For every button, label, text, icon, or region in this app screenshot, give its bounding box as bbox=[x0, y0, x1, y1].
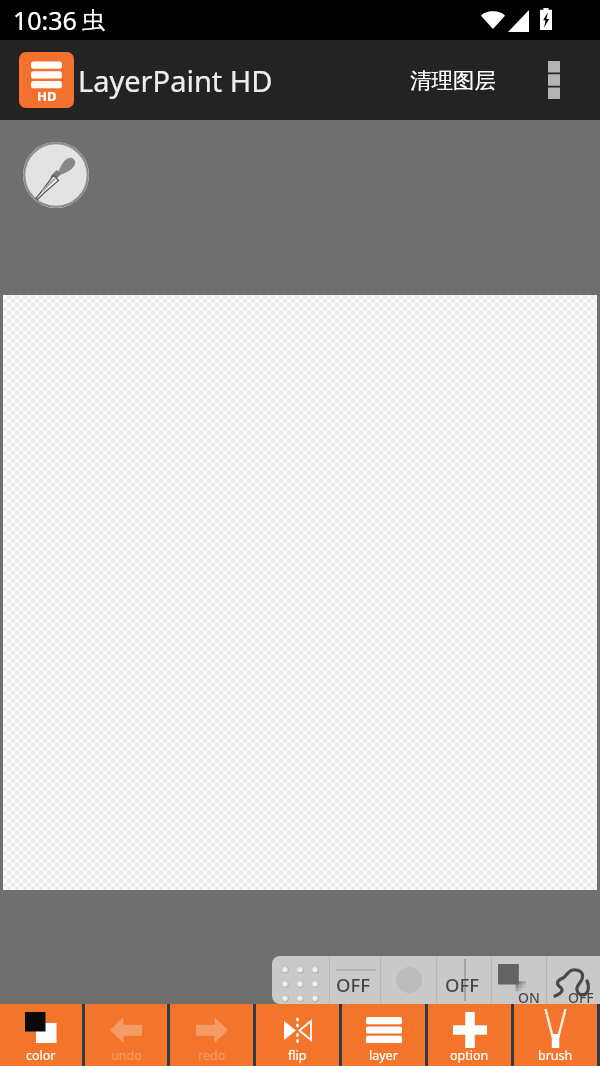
button[interactable]: brush bbox=[514, 1004, 597, 1066]
staticText: redo bbox=[198, 1047, 226, 1064]
staticText: ON bbox=[518, 988, 540, 1004]
button[interactable]: undo bbox=[85, 1004, 167, 1066]
button[interactable]: color bbox=[0, 1004, 82, 1066]
staticText: 清理图层 bbox=[410, 67, 496, 94]
staticText: color bbox=[26, 1047, 56, 1064]
staticText: 虫 bbox=[82, 6, 105, 35]
staticText: LayerPaint HD bbox=[78, 61, 273, 100]
button[interactable]: Color picker bbox=[23, 142, 89, 208]
button[interactable]: App logo bbox=[19, 52, 74, 108]
button[interactable]: OFF bbox=[437, 956, 491, 1004]
staticText: option bbox=[450, 1047, 489, 1064]
button[interactable]: layer bbox=[342, 1004, 425, 1066]
button[interactable]: Grid snap bbox=[272, 956, 329, 1004]
button[interactable]: Gradient on bbox=[492, 956, 546, 1004]
staticText: OFF bbox=[445, 972, 480, 997]
staticText: layer bbox=[369, 1047, 398, 1064]
button[interactable]: Stabilizer off bbox=[547, 956, 600, 1004]
staticText: undo bbox=[111, 1047, 142, 1064]
button[interactable]: OFF bbox=[330, 956, 380, 1004]
button[interactable]: option bbox=[428, 1004, 511, 1066]
button[interactable]: Blur bbox=[381, 956, 436, 1004]
staticText: brush bbox=[538, 1047, 573, 1064]
button[interactable]: flip bbox=[256, 1004, 339, 1066]
staticText: flip bbox=[288, 1047, 307, 1064]
staticText: OFF bbox=[568, 988, 594, 1004]
staticText: OFF bbox=[336, 972, 371, 997]
staticText: 10:36 bbox=[13, 3, 77, 37]
button[interactable]: redo bbox=[170, 1004, 253, 1066]
button[interactable]: 清理图层 bbox=[400, 55, 506, 106]
staticText: HD bbox=[37, 87, 57, 105]
button[interactable]: More options bbox=[537, 51, 571, 109]
